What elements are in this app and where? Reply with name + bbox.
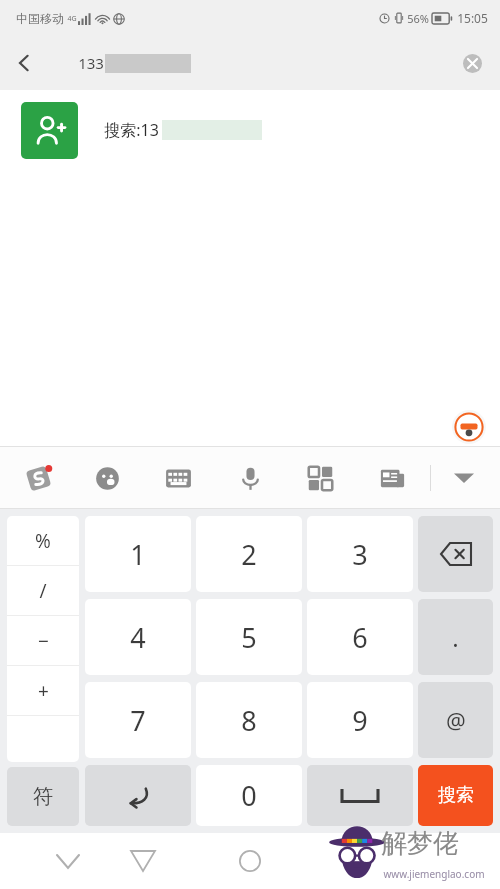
button[interactable]: Clear text	[452, 43, 492, 83]
button[interactable]: Sogou input	[14, 454, 62, 502]
button[interactable]: 4	[85, 599, 191, 675]
button[interactable]: 6	[307, 599, 413, 675]
staticText: 4	[130, 619, 146, 656]
staticText: 中国移动	[16, 11, 64, 26]
button[interactable]: Back	[0, 39, 48, 87]
staticText: 56%	[407, 11, 429, 26]
staticText: %	[35, 528, 51, 554]
button[interactable]: More apps	[296, 454, 344, 502]
staticText: 3	[352, 536, 368, 573]
staticText: @	[446, 705, 466, 735]
staticText: 解梦佬	[381, 827, 459, 860]
button[interactable]: %	[7, 516, 79, 565]
button[interactable]: @	[418, 682, 493, 758]
staticText: 9	[352, 702, 368, 739]
button[interactable]: +	[7, 666, 79, 715]
button[interactable]: Keyboard layout	[154, 454, 202, 502]
button[interactable]: Return	[85, 765, 191, 826]
button[interactable]: Hide toolbar	[442, 456, 486, 500]
staticText: 0	[241, 777, 257, 814]
staticText: 4G	[67, 14, 77, 24]
button[interactable]: 搜索:13	[0, 90, 500, 170]
staticText: 133	[78, 53, 104, 73]
button[interactable]: Space	[307, 765, 413, 826]
button[interactable]: 搜索	[418, 765, 493, 826]
button[interactable]: Sticker	[452, 410, 486, 444]
button[interactable]: .	[418, 599, 493, 675]
button[interactable]: Backspace	[418, 516, 493, 592]
button[interactable]: −	[7, 616, 79, 665]
staticText: −	[38, 628, 49, 654]
button[interactable]: Home	[220, 833, 280, 889]
button[interactable]: 8	[196, 682, 302, 758]
button[interactable]: /	[7, 566, 79, 615]
staticText: .	[452, 621, 459, 654]
staticText: /	[39, 578, 47, 604]
button[interactable]: Hide keyboard	[38, 833, 98, 889]
staticText: 2	[241, 536, 257, 573]
staticText: +	[38, 678, 49, 704]
button[interactable]: 1	[85, 516, 191, 592]
button[interactable]: 7	[85, 682, 191, 758]
staticText: 15:05	[457, 10, 488, 26]
staticText: 5	[241, 619, 257, 656]
staticText: 搜索	[438, 784, 474, 807]
button[interactable]: 3	[307, 516, 413, 592]
button[interactable]: 符	[7, 767, 79, 826]
button[interactable]: 0	[196, 765, 302, 826]
staticText: 7	[130, 702, 146, 739]
staticText: 符	[33, 784, 53, 809]
staticText: 6	[352, 619, 368, 656]
button[interactable]: News	[368, 454, 416, 502]
button[interactable]: Voice input	[226, 454, 274, 502]
button[interactable]: Back	[113, 833, 173, 889]
button[interactable]: 9	[307, 682, 413, 758]
staticText: 8	[241, 702, 257, 739]
button[interactable]: Emoji	[83, 454, 131, 502]
staticText: 搜索:13	[104, 119, 159, 141]
staticText: www.jiemenglao.com	[383, 867, 485, 881]
staticText: 1	[130, 536, 146, 573]
button[interactable]: 5	[196, 599, 302, 675]
button[interactable]: 2	[196, 516, 302, 592]
